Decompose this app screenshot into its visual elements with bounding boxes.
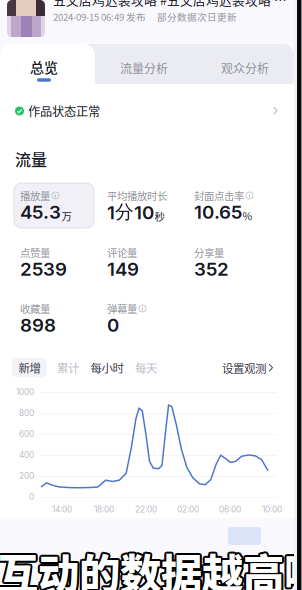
staticText: 平均播放时长 (107, 188, 167, 203)
staticText: 1分10 (107, 200, 154, 224)
staticText: 898 (20, 314, 56, 336)
staticText: 1000 (16, 387, 34, 397)
staticText: 149 (107, 258, 139, 280)
button[interactable]: 设置观测 (222, 361, 273, 375)
staticText: 秒 (154, 209, 164, 224)
staticText: 累计 (57, 359, 79, 376)
button[interactable]: 平均播放时长 (101, 183, 181, 228)
staticText: 互动的数据越高啊 (0, 541, 302, 590)
staticText: 22:00 (135, 504, 157, 514)
staticText: 400 (19, 450, 34, 460)
staticText: 互动的数据越高啊 (0, 539, 302, 590)
staticText: 互动的数据越高啊 (0, 539, 302, 590)
staticText: 352 (194, 258, 229, 280)
staticText: 互动的数据越高啊 (0, 541, 302, 590)
button[interactable]: 每天 (132, 358, 160, 377)
staticText: 02:00 (177, 504, 199, 514)
button[interactable]: 观众分析 (214, 60, 276, 76)
staticText: 2539 (20, 258, 67, 280)
staticText: 14:00 (52, 504, 72, 514)
button[interactable]: 点赞量 (14, 240, 94, 285)
staticText: 10:00 (262, 504, 282, 514)
button[interactable]: 流量分析 (113, 60, 175, 76)
staticText: 部分数据次日更新 (157, 9, 237, 23)
staticText: 观众分析 (221, 59, 269, 77)
button[interactable]: 封面点击率 (188, 183, 268, 228)
staticText: 点赞量 (20, 245, 50, 260)
staticText: 互动的数据越高啊 (0, 541, 302, 590)
staticText: 每天 (135, 359, 157, 376)
staticText: 流量 (15, 147, 47, 171)
staticText: 200 (19, 471, 34, 481)
staticText: 18:00 (94, 504, 114, 514)
staticText: % (242, 208, 252, 223)
button[interactable]: 评论量 (101, 240, 181, 285)
button[interactable]: 收藏量 (14, 296, 94, 341)
staticText: 五文店鸡迟装攻略 #五文店鸡迟装攻略 … (53, 0, 287, 9)
staticText: 收藏量 (20, 301, 50, 316)
staticText: 互动的数据越高啊 (0, 543, 302, 590)
staticText: 总览 (30, 57, 58, 77)
staticText: 弹幕量 (107, 301, 137, 316)
button[interactable]: 弹幕量 (101, 296, 181, 341)
button[interactable]: 播放量 (14, 183, 94, 228)
staticText: 2024-09-15 06:49 发布 (53, 9, 146, 23)
button[interactable]: 累计 (54, 358, 82, 377)
staticText: 封面点击率 (194, 188, 244, 203)
staticText: 0 (29, 492, 34, 502)
button[interactable]: 分享量 (188, 240, 268, 285)
staticText: 0 (107, 314, 119, 336)
button[interactable]: 作品状态正常 (0, 100, 294, 122)
button[interactable]: 总览 (22, 57, 66, 85)
staticText: 10.65 (194, 201, 242, 223)
staticText: 互动的数据越高啊 (0, 543, 302, 590)
staticText: 800 (19, 408, 34, 418)
staticText: 每小时 (90, 359, 123, 376)
staticText: 分享量 (194, 245, 224, 260)
staticText: 设置观测 (222, 360, 266, 376)
staticText: 作品状态正常 (28, 102, 100, 120)
staticText: 万 (61, 208, 71, 223)
button[interactable]: 新增 (12, 358, 47, 377)
staticText: 新增 (18, 359, 40, 376)
staticText: 06:00 (219, 504, 241, 514)
staticText: 流量分析 (120, 59, 168, 77)
staticText: 互动的数据越高啊 (0, 539, 302, 590)
staticText: 评论量 (107, 245, 137, 260)
button[interactable]: 每小时 (89, 358, 125, 377)
staticText: 互动的数据越高啊 (0, 543, 302, 590)
staticText: 600 (19, 429, 34, 439)
staticText: 播放量 (20, 188, 50, 203)
staticText: 45.3 (20, 201, 61, 223)
